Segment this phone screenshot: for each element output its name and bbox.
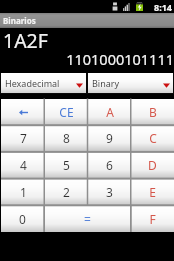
staticText: 1101000101111	[0, 49, 174, 69]
staticText: A	[106, 104, 114, 120]
staticText: 5	[63, 157, 70, 173]
button[interactable]: 9	[88, 125, 131, 151]
button[interactable]: A	[88, 99, 131, 125]
button[interactable]: 5	[45, 151, 88, 178]
button[interactable]: 3	[88, 178, 131, 205]
staticText: D	[148, 157, 157, 173]
button[interactable]: 1	[1, 178, 45, 205]
button[interactable]: Binary	[88, 73, 173, 93]
button[interactable]: C	[131, 125, 174, 151]
staticText: Binary	[92, 77, 120, 89]
staticText: =	[84, 211, 91, 227]
staticText: F	[149, 211, 156, 227]
staticText: C	[149, 130, 157, 146]
button[interactable]: F	[131, 205, 174, 232]
staticText: 3	[106, 184, 113, 200]
button[interactable]: CE	[45, 99, 88, 125]
button[interactable]: D	[131, 151, 174, 178]
staticText: Hexadecimal	[5, 77, 60, 89]
staticText: B	[149, 104, 157, 120]
button[interactable]: 0	[1, 205, 44, 232]
button[interactable]: Backspace	[1, 99, 45, 125]
staticText: 8:14	[154, 1, 172, 13]
staticText: 7	[20, 130, 27, 146]
button[interactable]: 8	[45, 125, 88, 151]
staticText: 2	[63, 184, 70, 200]
staticText: E	[149, 184, 156, 200]
staticText: 6	[106, 157, 113, 173]
button[interactable]: Binarios	[3, 15, 36, 26]
button[interactable]: B	[131, 99, 174, 125]
button[interactable]: =	[44, 205, 131, 232]
button[interactable]: 2	[45, 178, 88, 205]
staticText: 1	[20, 184, 27, 200]
staticText: 1A2F	[3, 27, 48, 54]
staticText: 9	[106, 130, 113, 146]
staticText: CE	[59, 104, 74, 120]
button[interactable]: E	[131, 178, 174, 205]
staticText: 0	[19, 211, 26, 227]
staticText: 4	[20, 157, 27, 173]
staticText: 8	[63, 130, 70, 146]
button[interactable]: 4	[1, 151, 45, 178]
button[interactable]: Hexadecimal	[1, 73, 86, 93]
button[interactable]: 7	[1, 125, 45, 151]
button[interactable]: 6	[88, 151, 131, 178]
